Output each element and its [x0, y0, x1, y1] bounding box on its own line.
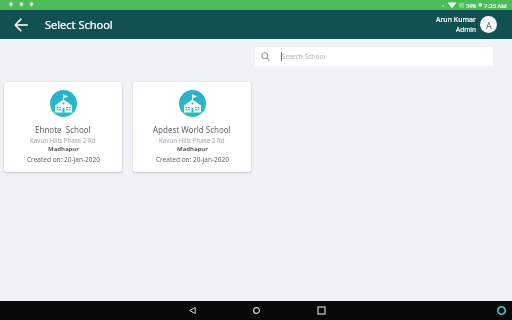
- staticText: Madhapur: [177, 145, 208, 153]
- button[interactable]: Arun Kumar: [436, 15, 497, 34]
- staticText: Kavun Hills Phase 2 Rd: [30, 136, 96, 144]
- button[interactable]: Apdest World School: [133, 82, 251, 172]
- staticText: Apdest World School: [153, 124, 231, 135]
- staticText: Created on: 20-Jan-2020: [156, 155, 229, 164]
- button[interactable]: Home: [244, 301, 268, 320]
- staticText: Created on: 20-Jan-2020: [27, 155, 100, 164]
- button[interactable]: Back: [10, 14, 31, 35]
- staticText: Kavun Hills Phase 2 Rd: [159, 136, 225, 144]
- staticText: A: [486, 19, 492, 31]
- button[interactable]: Recents: [309, 301, 333, 320]
- staticText: Select School: [45, 17, 113, 32]
- button[interactable]: Back: [180, 301, 204, 320]
- button[interactable]: Search School: [255, 47, 493, 66]
- staticText: 34%: [466, 2, 477, 9]
- staticText: Ehnote School: [35, 124, 91, 135]
- staticText: Madhapur: [48, 145, 79, 153]
- staticText: Search School: [282, 52, 326, 61]
- button[interactable]: Assistant: [490, 301, 512, 320]
- staticText: Arun Kumar: [436, 15, 476, 25]
- staticText: Admin: [456, 25, 476, 34]
- button[interactable]: Ehnote School: [4, 82, 122, 172]
- staticText: 7:26 AM: [484, 2, 507, 10]
